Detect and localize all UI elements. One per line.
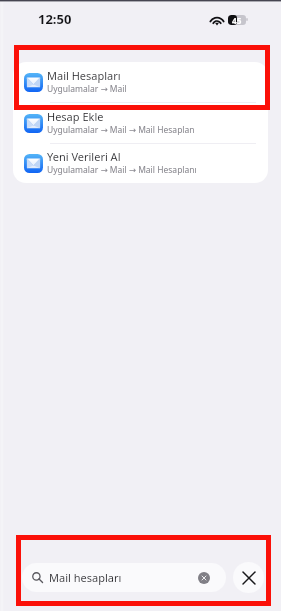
staticText: Uygulamalar → Mail → Mail Hesaplan <box>47 124 195 136</box>
staticText: Yeni Verileri Al <box>47 149 121 164</box>
staticText: 12:50 <box>38 10 72 28</box>
staticText: Mail Hesapları <box>47 68 121 83</box>
staticText: Hesap Ekle <box>47 109 104 124</box>
button[interactable]: Yeni Verileri Al <box>13 143 268 183</box>
staticText: Uygulamalar → Mail <box>47 83 127 95</box>
button[interactable]: Hesap Ekle <box>13 103 268 144</box>
button[interactable]: Clear text <box>198 572 210 584</box>
staticText: Uygulamalar → Mail → Mail Hesaplanı <box>47 164 197 176</box>
button[interactable]: Mail Hesapları <box>13 62 268 103</box>
button[interactable]: Close search <box>233 562 264 593</box>
button[interactable]: Mail hesapları <box>22 563 226 592</box>
staticText: 45 <box>232 15 242 25</box>
staticText: Mail hesapları <box>49 570 122 585</box>
